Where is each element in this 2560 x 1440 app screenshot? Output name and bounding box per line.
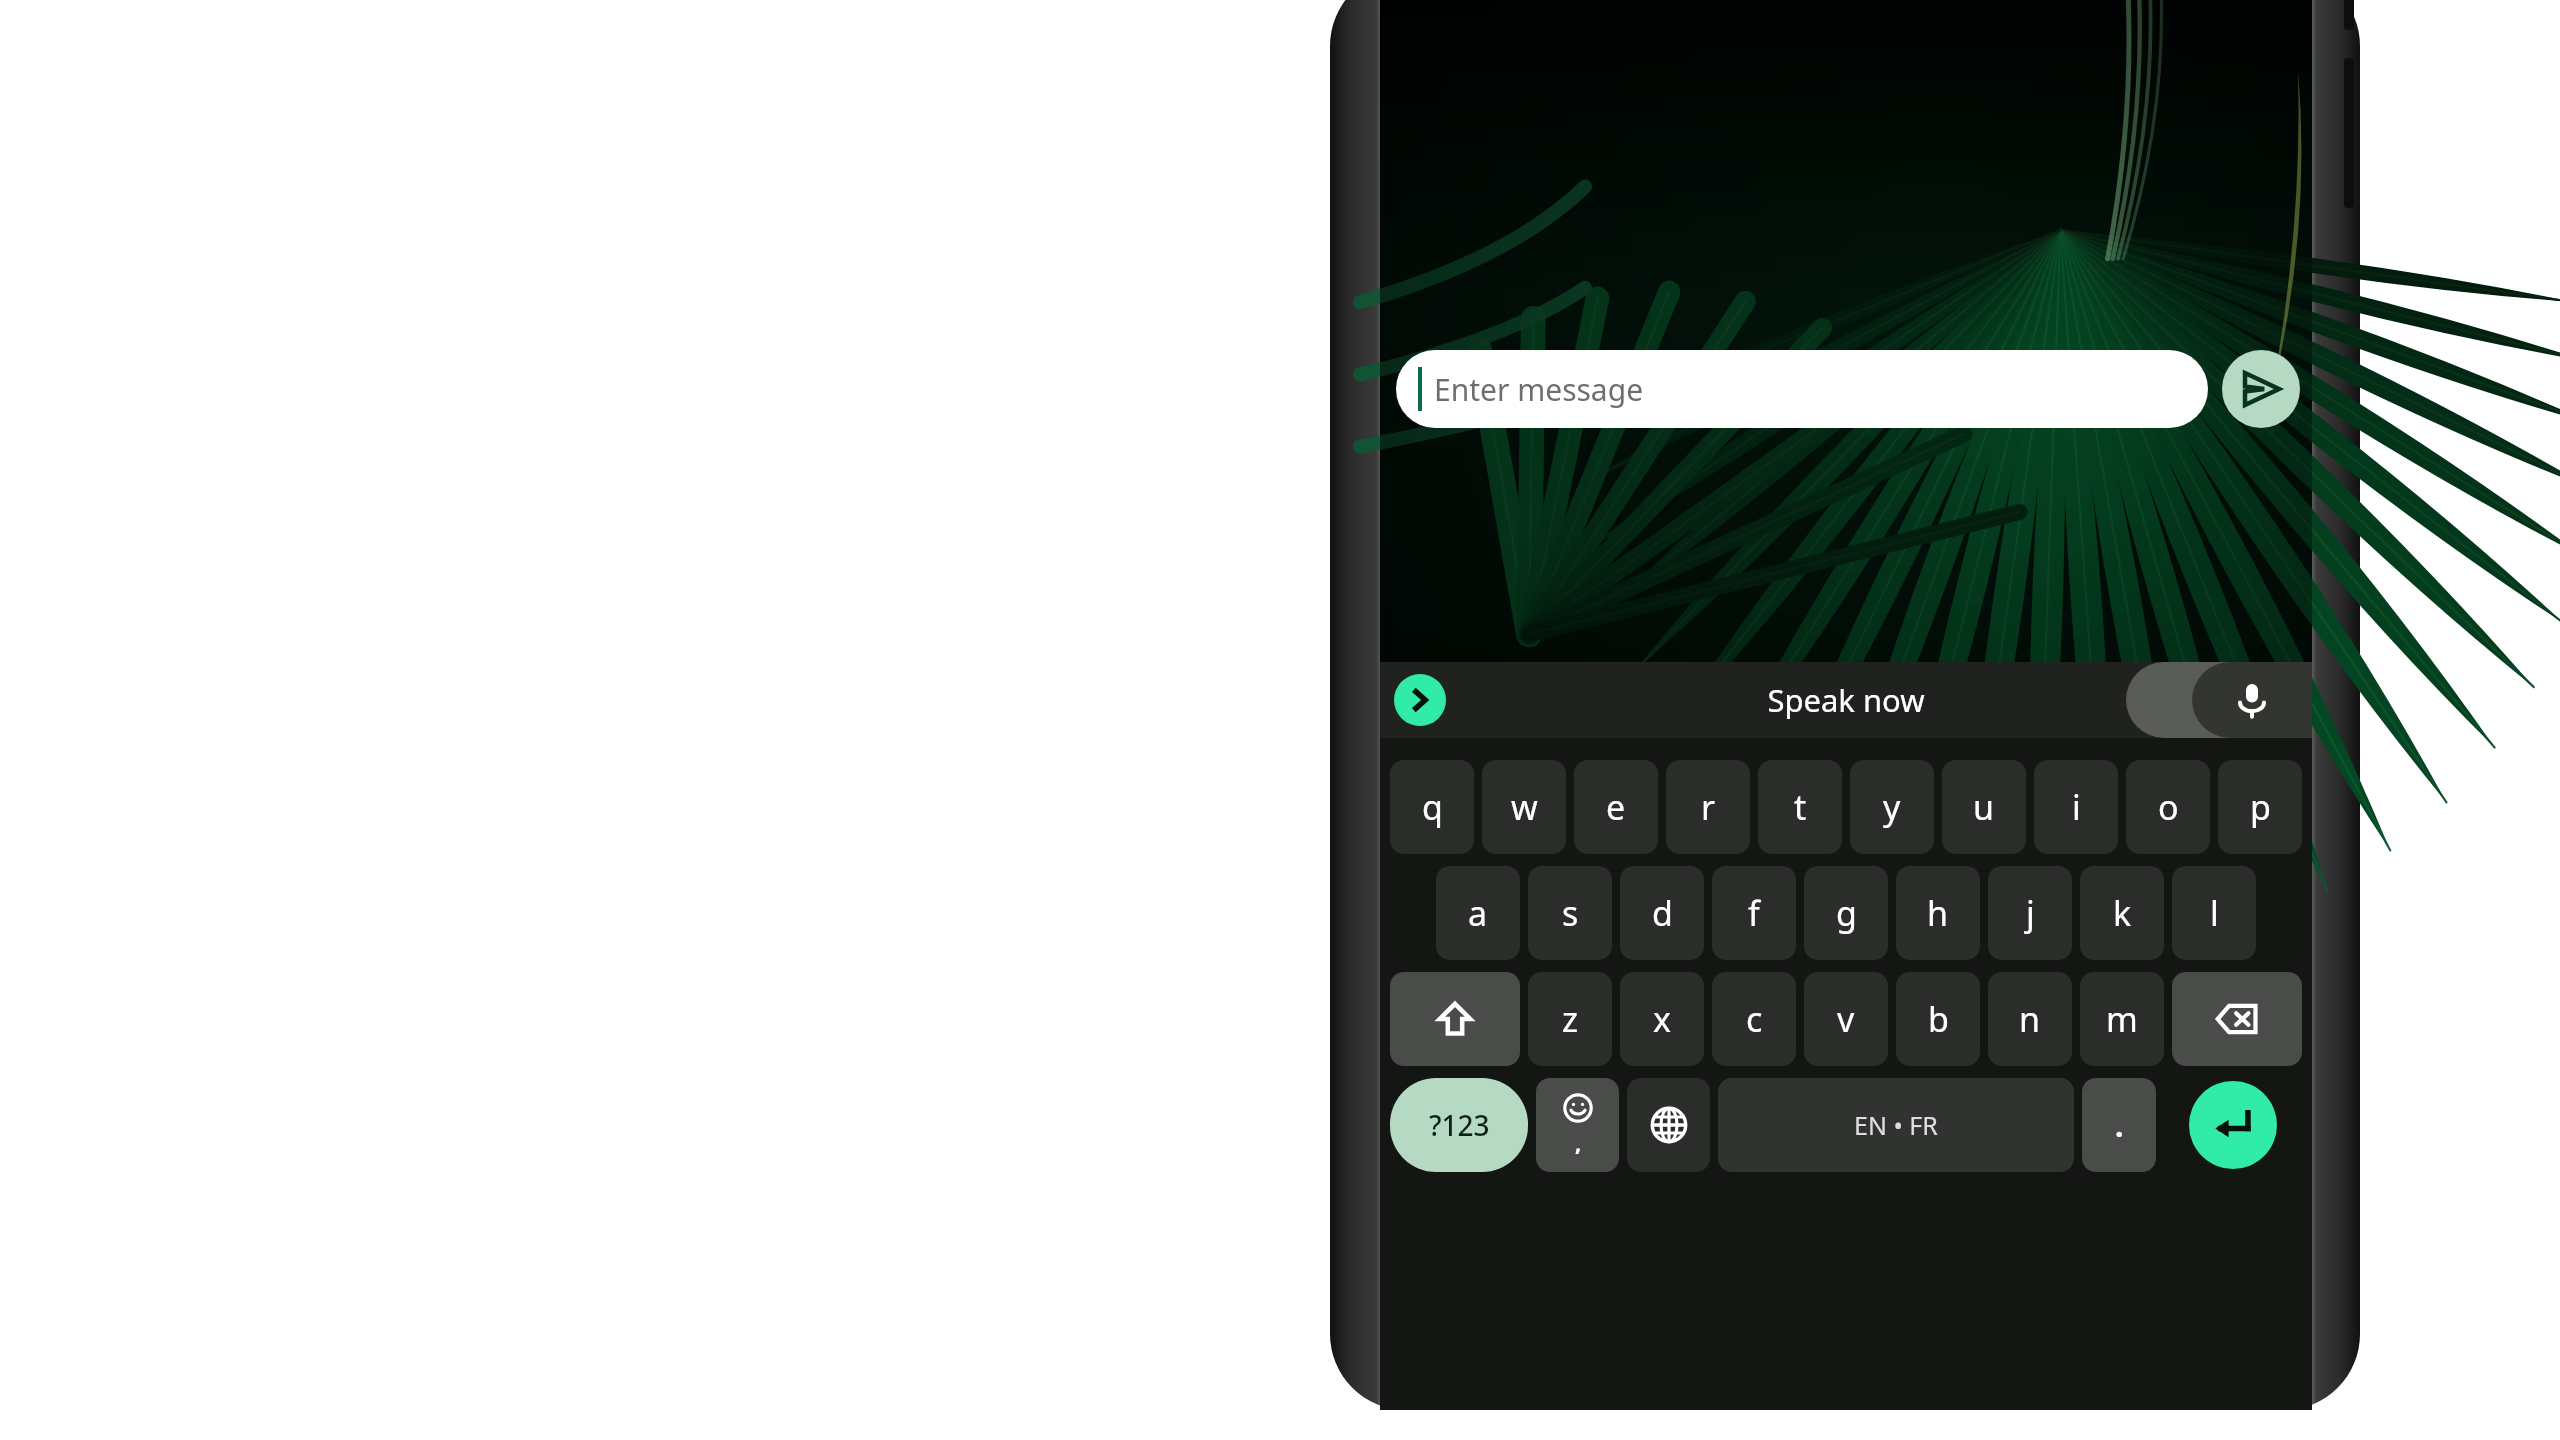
button[interactable]: s <box>1528 866 1612 960</box>
button[interactable]: e <box>1574 760 1658 854</box>
button[interactable]: v <box>1804 972 1888 1066</box>
button[interactable]: h <box>1896 866 1980 960</box>
button[interactable]: ?123 <box>1390 1078 1528 1172</box>
staticText: s <box>1562 890 1579 936</box>
button[interactable]: b <box>1896 972 1980 1066</box>
button[interactable]: a <box>1436 866 1520 960</box>
button[interactable]: Emoji <box>1536 1078 1619 1172</box>
button[interactable]: u <box>1942 760 2026 854</box>
button[interactable]: x <box>1620 972 1704 1066</box>
button[interactable]: d <box>1620 866 1704 960</box>
button[interactable]: c <box>1712 972 1796 1066</box>
button[interactable]: o <box>2126 760 2210 854</box>
staticText: EN • FR <box>1854 1108 1938 1142</box>
staticText: k <box>2113 890 2132 936</box>
staticText: i <box>2072 784 2081 830</box>
staticText: f <box>1748 890 1760 936</box>
staticText: x <box>1653 996 1671 1042</box>
staticText: n <box>2019 996 2041 1042</box>
staticText: ?123 <box>1429 1106 1490 1144</box>
button[interactable]: Shift <box>1390 972 1520 1066</box>
button[interactable]: y <box>1850 760 1934 854</box>
staticText: Enter message <box>1434 369 1644 410</box>
button[interactable]: Backspace <box>2172 972 2302 1066</box>
staticText: a <box>1468 890 1488 936</box>
staticText: m <box>2106 996 2138 1042</box>
staticText: z <box>1562 996 1578 1042</box>
button[interactable]: EN • FR <box>1718 1078 2074 1172</box>
button[interactable]: i <box>2034 760 2118 854</box>
button[interactable]: f <box>1712 866 1796 960</box>
button[interactable]: j <box>1988 866 2072 960</box>
staticText: o <box>2158 784 2179 830</box>
staticText: Speak now <box>1767 679 1925 721</box>
staticText: v <box>1837 996 1855 1042</box>
button[interactable]: Expand <box>1394 674 1446 726</box>
button[interactable]: q <box>1390 760 1474 854</box>
staticText: c <box>1746 996 1763 1042</box>
button[interactable]: Send <box>2222 350 2300 428</box>
button[interactable]: w <box>1482 760 1566 854</box>
staticText: q <box>1422 784 1443 830</box>
staticText: . <box>2115 1105 2124 1146</box>
button[interactable]: z <box>1528 972 1612 1066</box>
staticText: g <box>1836 890 1857 936</box>
staticText: d <box>1652 890 1673 936</box>
button[interactable]: m <box>2080 972 2164 1066</box>
staticText: h <box>1927 890 1949 936</box>
staticText: e <box>1606 784 1626 830</box>
button[interactable]: . <box>2082 1078 2156 1172</box>
button[interactable]: p <box>2218 760 2302 854</box>
staticText: b <box>1928 996 1949 1042</box>
staticText: l <box>2210 890 2219 936</box>
button[interactable]: Enter message <box>1396 350 2208 428</box>
staticText: r <box>1701 784 1716 830</box>
staticText: j <box>2026 890 2035 936</box>
button[interactable]: k <box>2080 866 2164 960</box>
button[interactable]: Enter <box>2189 1081 2277 1169</box>
staticText: , <box>1575 1127 1582 1157</box>
button[interactable]: g <box>1804 866 1888 960</box>
button[interactable]: Change language <box>1627 1078 1710 1172</box>
button[interactable]: r <box>1666 760 1750 854</box>
button[interactable]: l <box>2172 866 2256 960</box>
staticText: u <box>1973 784 1995 830</box>
button[interactable]: t <box>1758 760 1842 854</box>
staticText: t <box>1794 784 1807 830</box>
staticText: y <box>1883 784 1901 830</box>
button[interactable]: n <box>1988 972 2072 1066</box>
staticText: p <box>2250 784 2271 830</box>
staticText: w <box>1511 784 1538 830</box>
button[interactable]: Microphone <box>2126 662 2312 738</box>
